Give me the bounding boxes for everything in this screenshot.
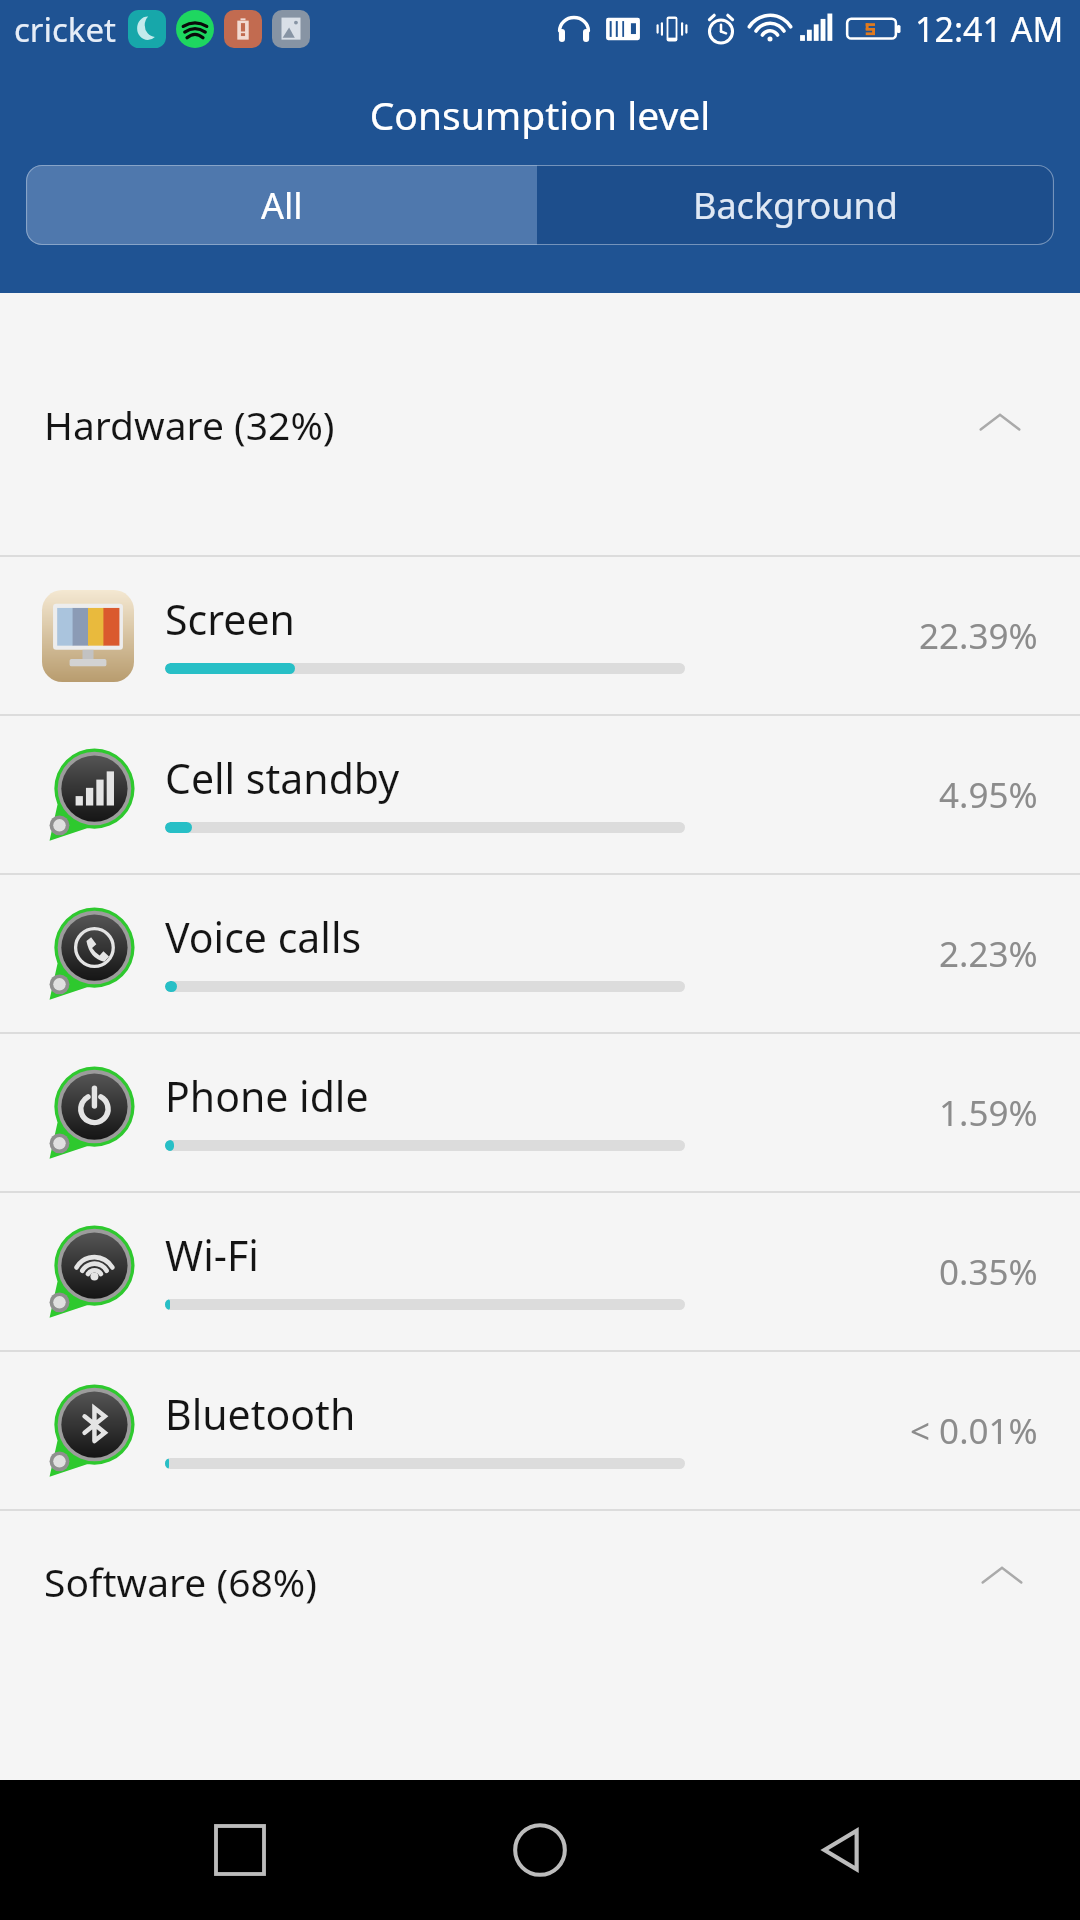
staticText: < 0.01% bbox=[910, 1407, 1038, 1455]
button[interactable]: Home bbox=[480, 1790, 600, 1910]
button[interactable]: Voice calls bbox=[0, 875, 1080, 1032]
staticText: 12:41 AM bbox=[915, 6, 1064, 52]
button[interactable]: Recent apps bbox=[180, 1790, 300, 1910]
button[interactable]: Bluetooth bbox=[0, 1352, 1080, 1509]
button[interactable]: Phone idle bbox=[0, 1034, 1080, 1191]
staticText: Bluetooth bbox=[165, 1386, 356, 1442]
staticText: 1.59% bbox=[939, 1089, 1038, 1137]
staticText: Consumption level bbox=[0, 88, 1080, 141]
staticText: 22.39% bbox=[919, 612, 1038, 660]
staticText: Hardware (32%) bbox=[44, 398, 335, 451]
staticText: All bbox=[261, 181, 303, 230]
staticText: 4.95% bbox=[939, 771, 1038, 819]
button[interactable]: Cell standby bbox=[0, 716, 1080, 873]
staticText: Wi-Fi bbox=[165, 1227, 259, 1283]
staticText: Phone idle bbox=[165, 1068, 369, 1124]
button[interactable]: Back bbox=[780, 1790, 900, 1910]
button[interactable]: Wi-Fi bbox=[0, 1193, 1080, 1350]
other: Collapse Hardware section bbox=[970, 394, 1030, 454]
staticText: Screen bbox=[165, 591, 295, 647]
staticText: 0.35% bbox=[939, 1248, 1038, 1296]
staticText: 2.23% bbox=[939, 930, 1038, 978]
other: Collapse Software section bbox=[974, 1549, 1030, 1605]
button[interactable]: Hardware (32%) bbox=[0, 293, 1080, 555]
staticText: Background bbox=[693, 181, 898, 230]
button[interactable]: All bbox=[26, 165, 537, 245]
staticText: Cell standby bbox=[165, 750, 400, 806]
staticText: cricket bbox=[14, 7, 116, 52]
staticText: Voice calls bbox=[165, 909, 362, 965]
staticText: Software (68%) bbox=[44, 1555, 317, 1608]
button[interactable]: Screen bbox=[0, 557, 1080, 714]
button[interactable]: Software (68%) bbox=[0, 1511, 1080, 1780]
button[interactable]: Background bbox=[537, 165, 1054, 245]
